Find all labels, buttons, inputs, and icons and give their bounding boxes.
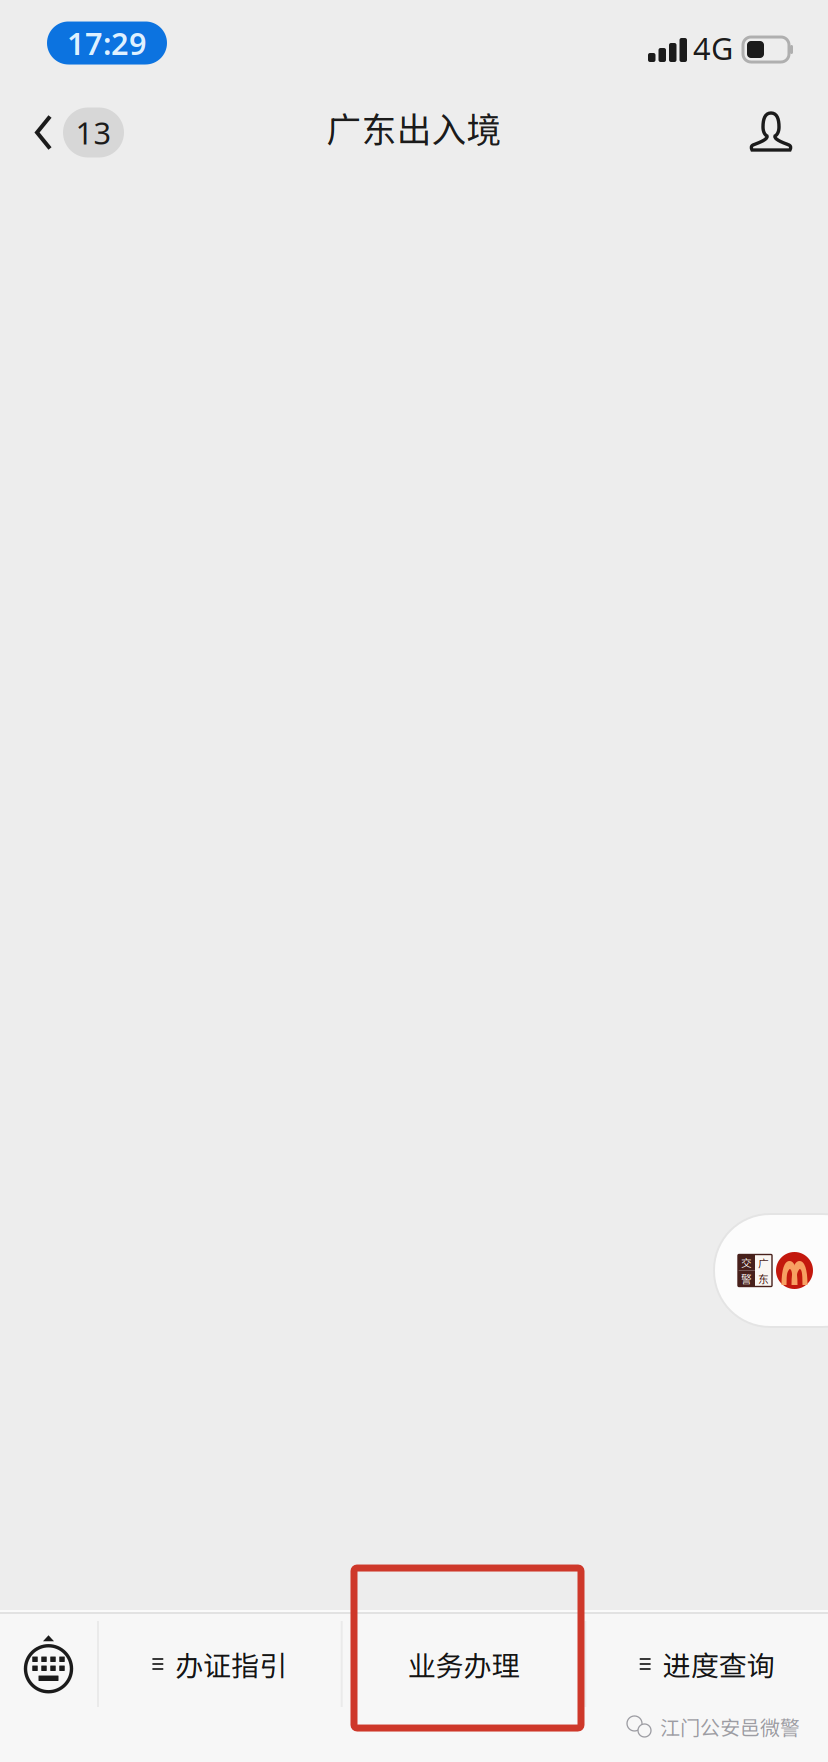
staticText: 13 <box>75 112 111 153</box>
staticText: 进度查询 <box>663 1644 775 1684</box>
staticText: 江门公安邑微警 <box>660 1712 800 1741</box>
staticText: 广东出入境 <box>326 102 501 153</box>
staticText: 业务办理 <box>407 1644 519 1684</box>
staticText: 警 <box>741 1271 752 1286</box>
button[interactable]: 进度查询 <box>586 1614 828 1714</box>
button[interactable]: Back, 13 unread <box>0 91 138 167</box>
button[interactable]: 办证指引 <box>99 1614 341 1714</box>
staticText: 办证指引 <box>175 1644 287 1684</box>
button[interactable]: Contact card <box>731 91 828 167</box>
button[interactable]: 交警广东 mini program <box>738 1254 772 1286</box>
staticText: 东 <box>758 1271 769 1286</box>
staticText: 广 <box>758 1255 769 1270</box>
button[interactable]: 业务办理 <box>343 1614 584 1714</box>
staticText: 4G <box>693 28 733 68</box>
staticText: 17:29 <box>67 23 147 63</box>
staticText: 交 <box>741 1255 752 1270</box>
button[interactable]: Keyboard <box>0 1614 97 1714</box>
button[interactable]: 麦当劳 mini program <box>776 1252 813 1289</box>
